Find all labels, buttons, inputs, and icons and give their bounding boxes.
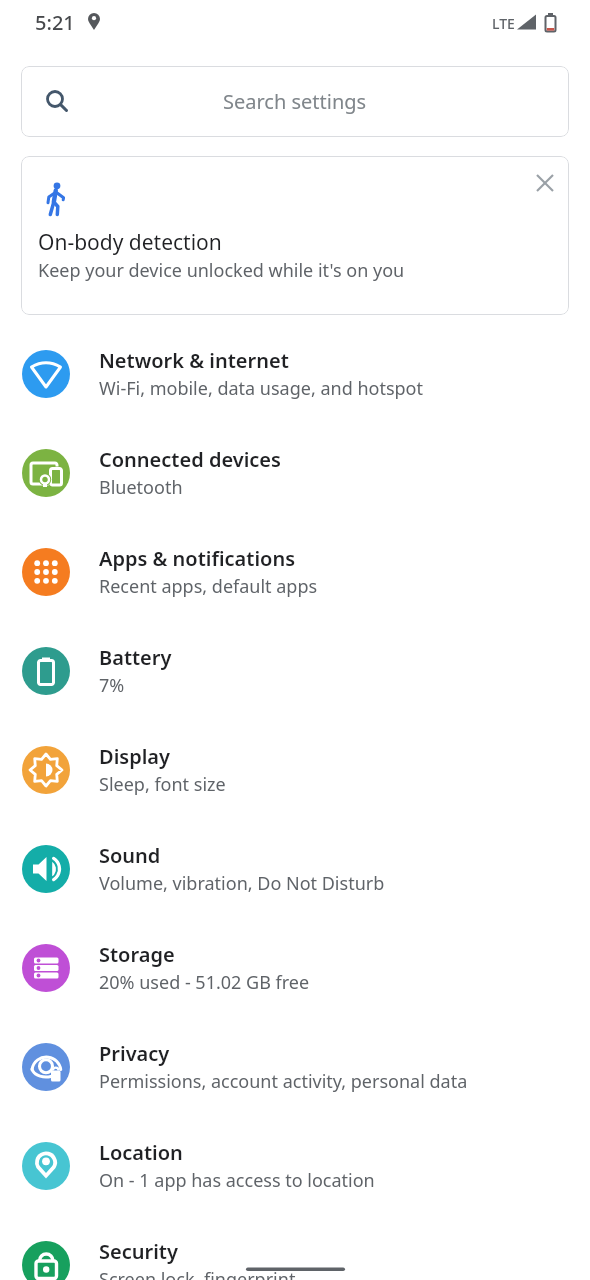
staticText: Wi-Fi, mobile, data usage, and hotspot xyxy=(99,376,423,401)
staticText: Sleep, font size xyxy=(99,772,226,797)
button[interactable]: Connected devices xyxy=(0,423,590,522)
staticText: Storage xyxy=(99,941,175,968)
staticText: LTE xyxy=(492,14,515,33)
button[interactable]: Network & internet xyxy=(0,324,590,423)
staticText: 5:21 xyxy=(35,9,75,36)
staticText: Location xyxy=(99,1139,183,1166)
button[interactable]: On-body detection xyxy=(21,156,569,315)
staticText: Bluetooth xyxy=(99,475,183,500)
button[interactable]: Location xyxy=(0,1116,590,1215)
staticText: 7% xyxy=(99,673,125,698)
staticText: Keep your device unlocked while it's on … xyxy=(38,258,405,283)
button[interactable]: Apps & notifications xyxy=(0,522,590,621)
staticText: On-body detection xyxy=(38,228,222,257)
staticText: Security xyxy=(99,1238,178,1265)
staticText: Display xyxy=(99,743,170,770)
staticText: Sound xyxy=(99,842,161,869)
staticText: Permissions, account activity, personal … xyxy=(99,1069,468,1094)
button[interactable]: Privacy xyxy=(0,1017,590,1116)
button[interactable]: Security xyxy=(0,1215,590,1280)
staticText: 20% used - 51.02 GB free xyxy=(99,970,310,995)
staticText: Screen lock, fingerprint xyxy=(99,1267,296,1280)
staticText: Apps & notifications xyxy=(99,545,296,572)
staticText: Volume, vibration, Do Not Disturb xyxy=(99,871,385,896)
staticText: Recent apps, default apps xyxy=(99,574,318,599)
button[interactable]: Display xyxy=(0,720,590,819)
button[interactable]: Search settings xyxy=(21,66,569,137)
button[interactable]: Storage xyxy=(0,918,590,1017)
staticText: Network & internet xyxy=(99,347,289,374)
staticText: Privacy xyxy=(99,1040,170,1067)
staticText: On - 1 app has access to location xyxy=(99,1168,375,1193)
staticText: Connected devices xyxy=(99,446,281,473)
button[interactable]: Battery xyxy=(0,621,590,720)
staticText: Battery xyxy=(99,644,172,671)
button[interactable]: Sound xyxy=(0,819,590,918)
staticText: Search settings xyxy=(223,88,367,115)
